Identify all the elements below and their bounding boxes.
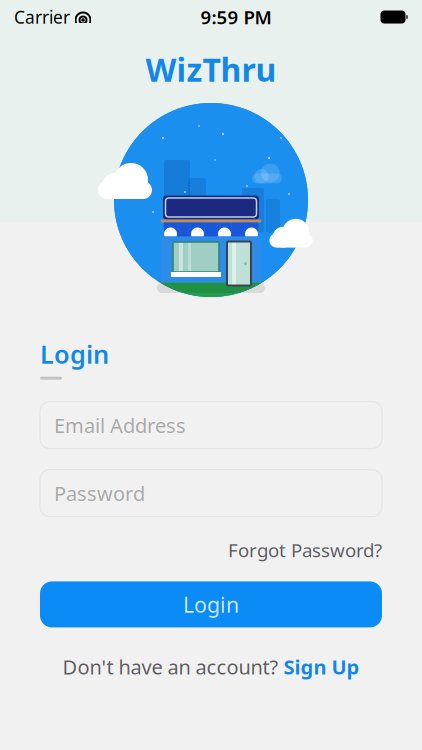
staticText: Email Address bbox=[54, 412, 186, 438]
button[interactable]: Forgot Password? bbox=[228, 534, 382, 566]
staticText: Carrier bbox=[14, 5, 70, 28]
staticText: Forgot Password? bbox=[228, 538, 382, 562]
staticText: Login bbox=[183, 590, 239, 619]
staticText: Don't have an account? bbox=[62, 653, 278, 680]
staticText: Login bbox=[40, 337, 109, 371]
staticText: Sign Up bbox=[283, 653, 359, 680]
staticText: 9:59 PM bbox=[200, 5, 271, 29]
staticText: Password bbox=[54, 480, 145, 506]
staticText: WizThru bbox=[145, 48, 276, 90]
button[interactable]: Login bbox=[40, 581, 382, 627]
button[interactable]: Sign Up bbox=[283, 653, 359, 680]
